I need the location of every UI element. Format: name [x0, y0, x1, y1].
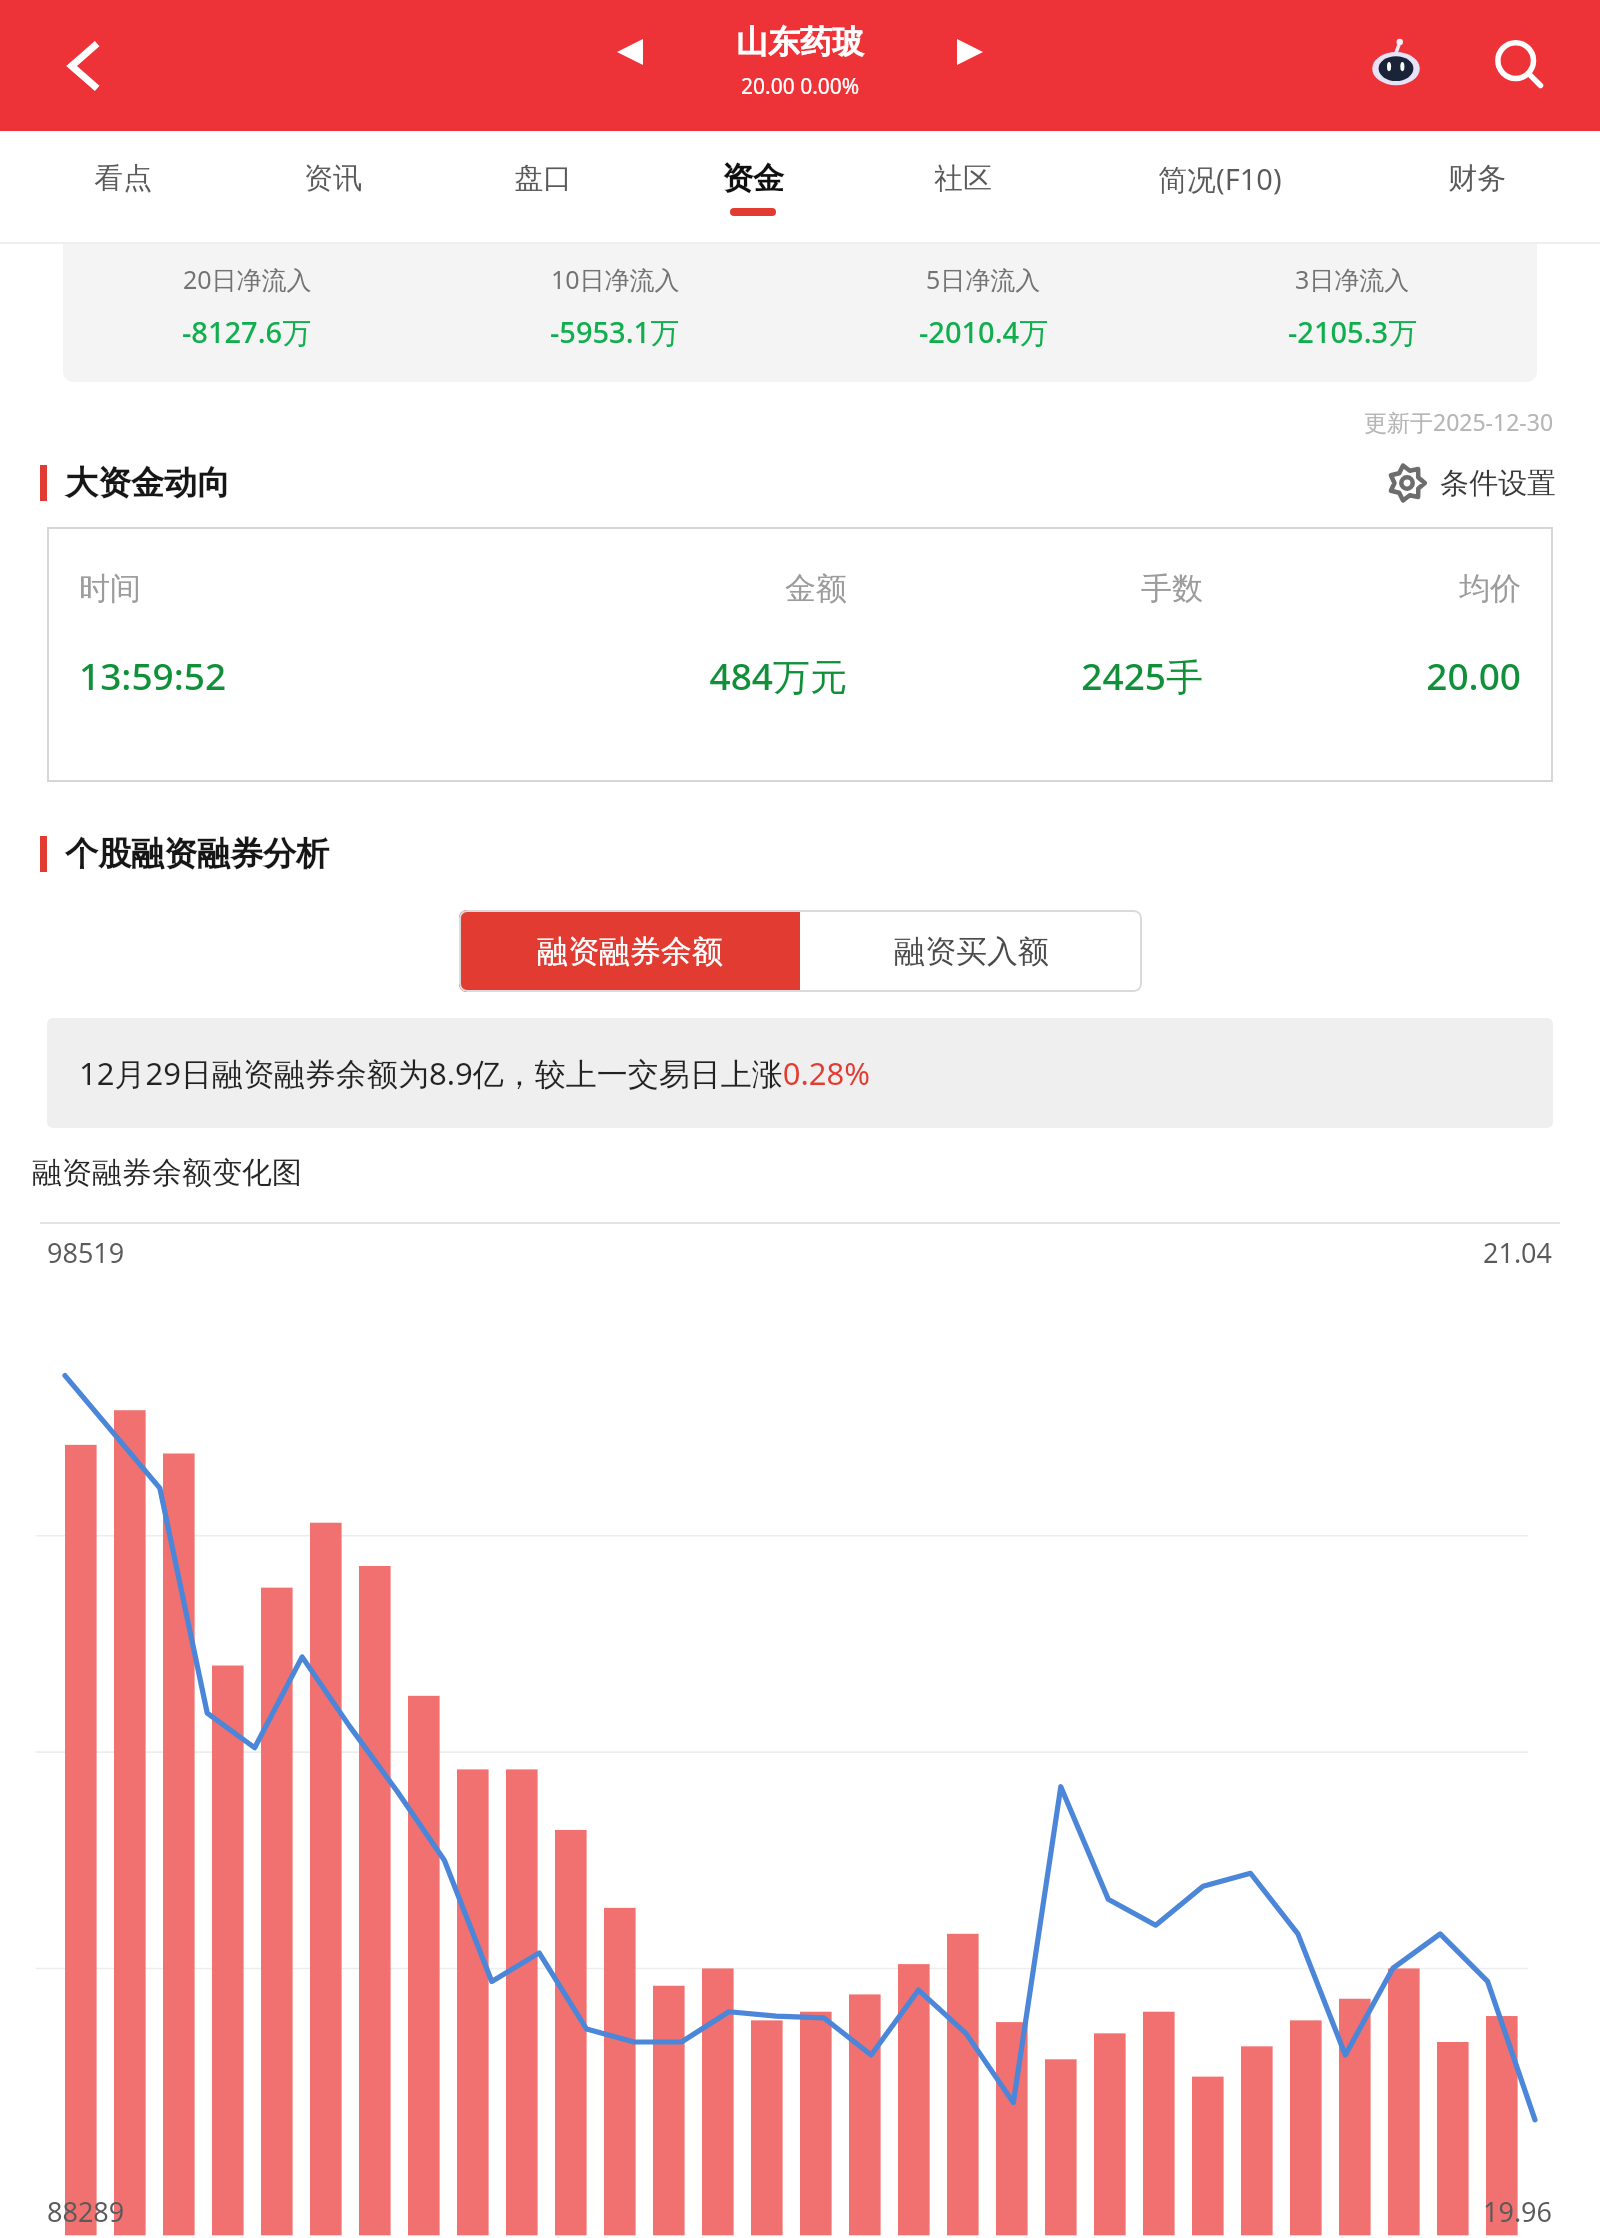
button[interactable]: 资金 [648, 131, 858, 244]
staticText: 19.96 [1483, 2193, 1553, 2230]
staticText: 个股融资融券分析 [65, 833, 329, 875]
staticText: 简况(F10) [1158, 159, 1282, 199]
staticText: 条件设置 [1440, 465, 1556, 502]
button[interactable]: 资讯 [228, 131, 438, 244]
staticText: 看点 [94, 160, 152, 197]
staticText: 20.00 0.00% [741, 72, 860, 101]
staticText: 484万元 [454, 650, 847, 701]
staticText: 更新于2025-12-30 [1364, 406, 1554, 437]
button[interactable]: 融资买入额 [800, 910, 1142, 992]
staticText: 21.04 [1483, 1234, 1553, 1271]
staticText: 88289 [47, 2193, 125, 2230]
staticText: 均价 [1203, 569, 1521, 608]
staticText: 时间 [79, 569, 454, 608]
staticText: -8127.6万 [182, 312, 312, 352]
staticText: 5日净流入 [926, 262, 1041, 296]
staticText: 资金 [722, 159, 784, 198]
staticText: -5953.1万 [550, 312, 680, 352]
staticText: 山东药玻 [736, 22, 864, 62]
staticText: 2425手 [847, 650, 1203, 701]
button[interactable]: Next stock [940, 22, 1000, 82]
button[interactable]: Previous stock [600, 22, 660, 82]
staticText: 资讯 [304, 160, 362, 197]
staticText: 社区 [934, 160, 992, 197]
button[interactable]: Search [1480, 26, 1560, 106]
staticText: 20日净流入 [183, 262, 312, 296]
button[interactable]: 融资融券余额 [459, 910, 800, 992]
staticText: 13:59:52 [79, 650, 454, 700]
staticText: 融资融券余额 [537, 932, 723, 971]
button[interactable]: 财务 [1372, 131, 1582, 244]
staticText: -2010.4万 [919, 312, 1049, 352]
staticText: 98519 [47, 1234, 125, 1271]
button[interactable]: 条件设置 [1384, 458, 1560, 508]
staticText: 手数 [847, 569, 1203, 608]
staticText: 3日净流入 [1295, 262, 1410, 296]
button[interactable]: 简况(F10) [1068, 131, 1372, 244]
staticText: 融资买入额 [894, 932, 1049, 971]
staticText: 大资金动向 [65, 462, 230, 504]
staticText: 10日净流入 [551, 262, 680, 296]
button[interactable]: 社区 [858, 131, 1068, 244]
staticText: 盘口 [514, 160, 572, 197]
button[interactable]: 盘口 [438, 131, 648, 244]
staticText: 20.00 [1203, 650, 1521, 700]
staticText: 融资融券余额变化图 [32, 1154, 302, 1192]
staticText: 金额 [454, 569, 847, 608]
button[interactable]: 看点 [18, 131, 228, 244]
button[interactable]: Back [48, 30, 120, 102]
staticText: 财务 [1448, 160, 1506, 197]
staticText: 12月29日融资融券余额为8.9亿，较上一交易日上涨0.28% [79, 1052, 870, 1094]
button[interactable]: AI assistant [1356, 26, 1436, 106]
staticText: -2105.3万 [1288, 312, 1418, 352]
